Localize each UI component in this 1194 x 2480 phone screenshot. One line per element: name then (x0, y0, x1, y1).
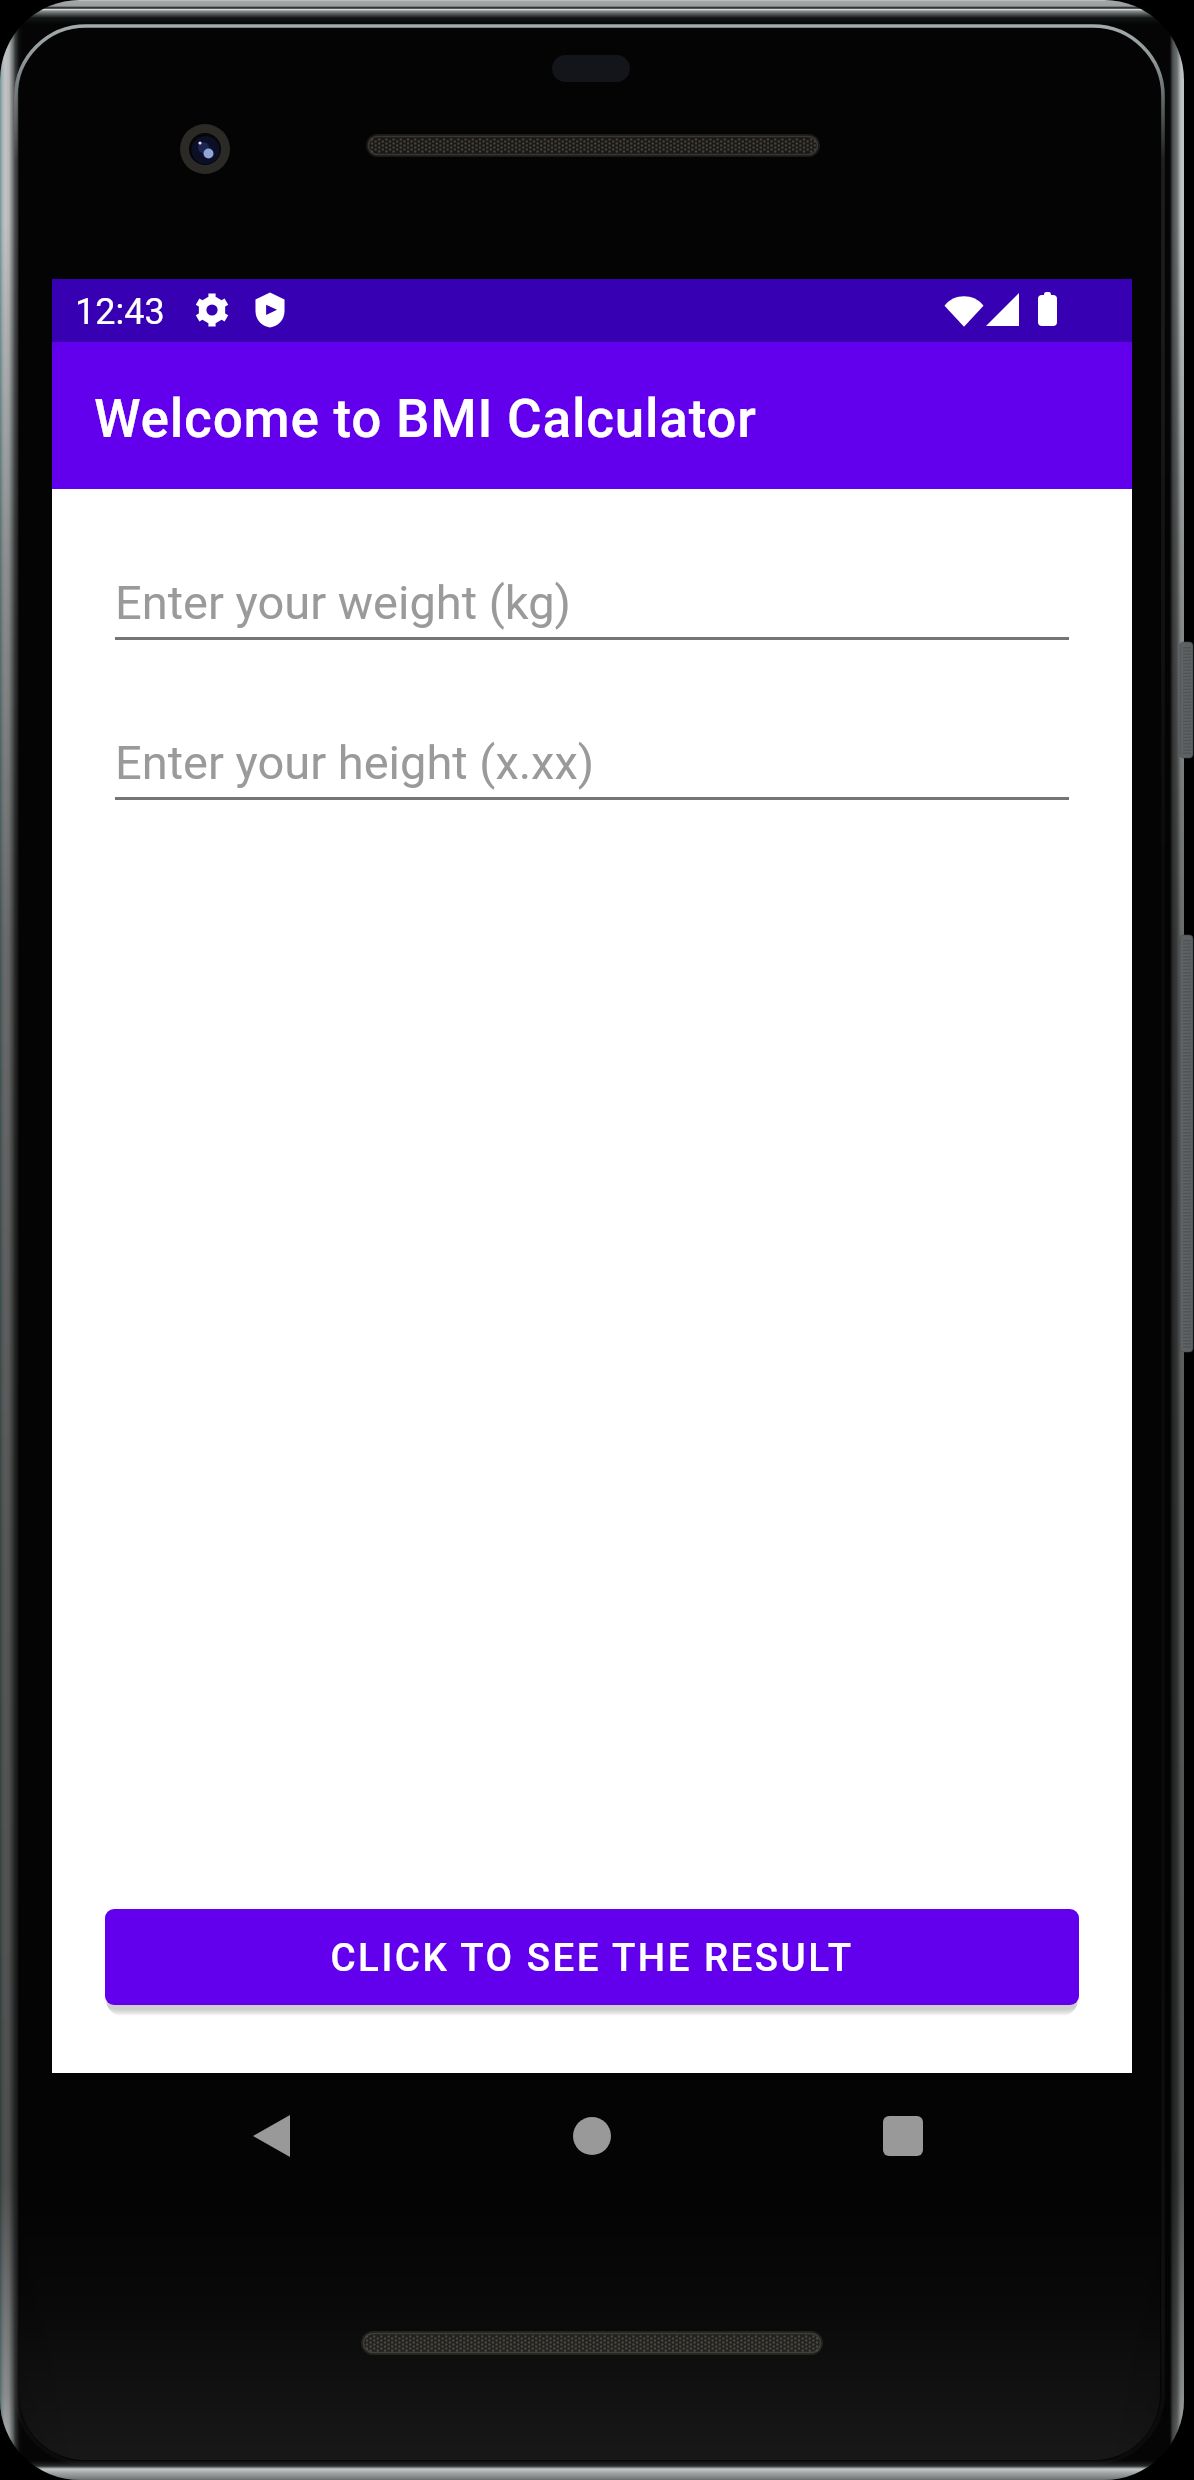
staticText: 12:43 (75, 291, 165, 333)
staticText: Enter your weight (kg) (115, 575, 571, 630)
button[interactable]: Enter your weight (kg) (115, 575, 1069, 640)
staticText: Enter your height (x.xx) (115, 735, 595, 790)
button[interactable]: Back (235, 2073, 315, 2199)
button[interactable]: CLICK TO SEE THE RESULT (105, 1909, 1079, 2005)
button[interactable]: Recent apps (863, 2073, 943, 2199)
button[interactable]: Enter your height (x.xx) (115, 735, 1069, 800)
staticText: Welcome to BMI Calculator (94, 388, 757, 450)
button[interactable]: Home (552, 2073, 632, 2199)
staticText: CLICK TO SEE THE RESULT (330, 1935, 854, 1980)
